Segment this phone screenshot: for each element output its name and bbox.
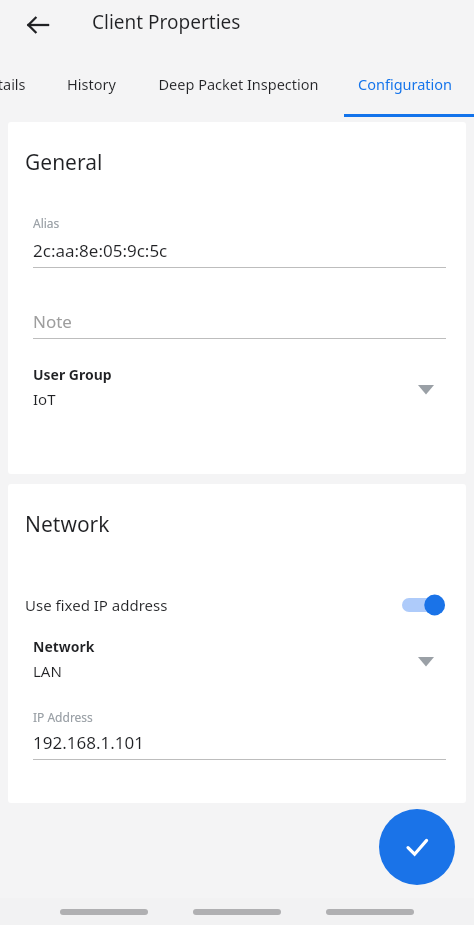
button[interactable]: Deep Packet Inspection [140, 58, 336, 110]
staticText: History [67, 74, 116, 94]
button[interactable]: Network [8, 637, 466, 699]
staticText: 2c:aa:8e:05:9c:5c [33, 239, 168, 262]
button[interactable]: Recent apps [326, 909, 414, 915]
staticText: IoT [33, 389, 56, 409]
staticText: Details [0, 74, 26, 94]
staticText: Alias [33, 215, 60, 231]
button[interactable]: Back [60, 909, 148, 915]
button[interactable]: Home [193, 909, 281, 915]
button[interactable]: Note [8, 307, 466, 351]
button[interactable]: Alias [8, 215, 466, 275]
staticText: LAN [33, 661, 62, 681]
button[interactable]: Use fixed IP address [8, 585, 466, 625]
staticText: User Group [33, 365, 112, 384]
button[interactable]: History [50, 58, 132, 110]
button[interactable]: Configuration [344, 58, 474, 110]
button[interactable]: Save [379, 809, 455, 885]
button[interactable]: User Group [8, 363, 466, 425]
staticText: Configuration [358, 74, 453, 94]
button[interactable]: Back [14, 1, 62, 49]
staticText: IP Address [33, 709, 93, 725]
staticText: Deep Packet Inspection [158, 74, 319, 94]
staticText: Network [33, 637, 95, 656]
staticText: Client Properties [92, 9, 241, 35]
staticText: Note [33, 310, 72, 333]
staticText: 192.168.1.101 [33, 731, 144, 754]
staticText: Use fixed IP address [25, 595, 168, 615]
staticText: General [25, 148, 103, 177]
button[interactable]: IP Address [8, 709, 466, 767]
staticText: Network [25, 510, 110, 539]
button[interactable]: Details [0, 58, 32, 110]
